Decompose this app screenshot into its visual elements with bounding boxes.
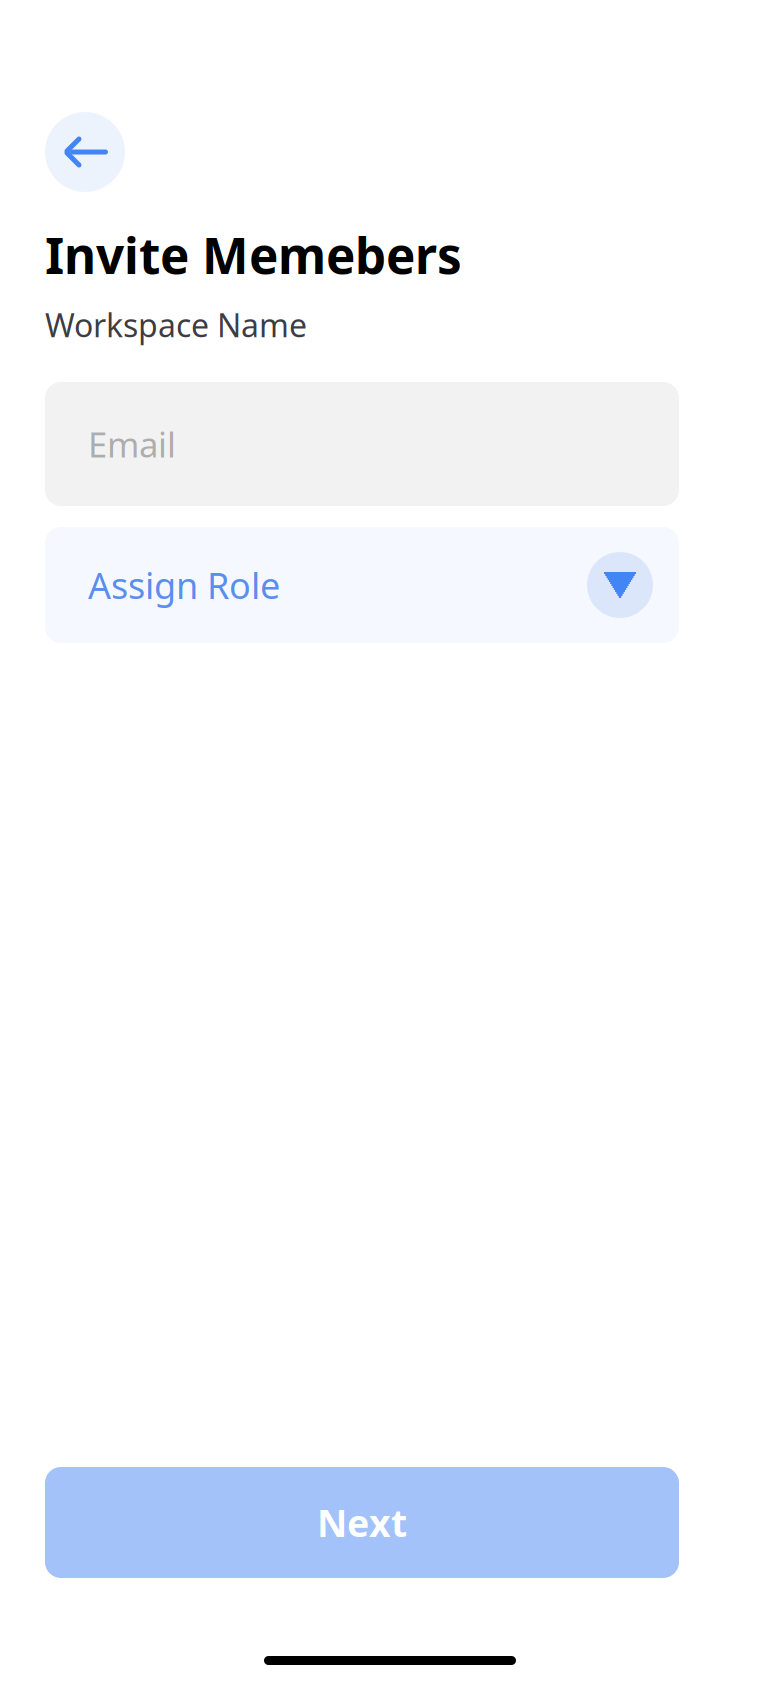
button[interactable]: Next [45, 1467, 679, 1578]
staticText: Assign Role [88, 561, 280, 609]
button[interactable]: Back [45, 112, 125, 192]
staticText: Email [88, 421, 176, 467]
button[interactable]: Email [45, 382, 679, 506]
staticText: Invite Memebers [45, 222, 462, 287]
staticText: Next [317, 1498, 407, 1547]
button[interactable]: Assign Role [45, 527, 679, 643]
staticText: Workspace Name [45, 303, 307, 346]
